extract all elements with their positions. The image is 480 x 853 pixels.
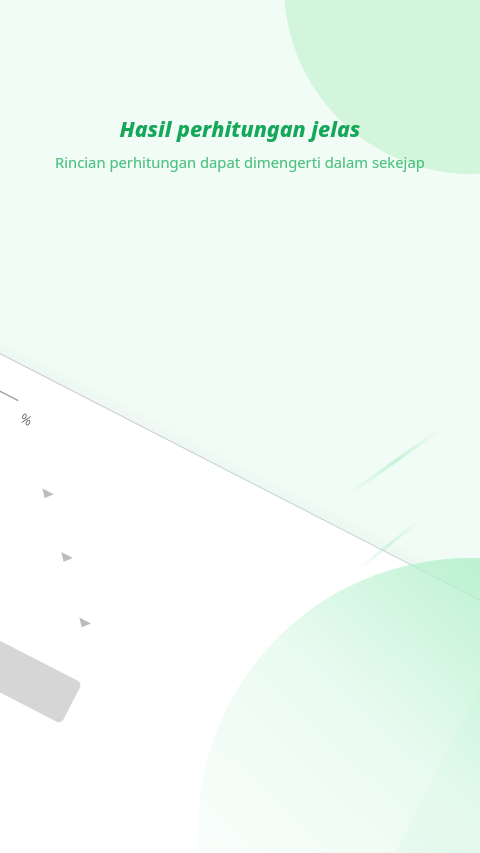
- button[interactable]: Atur Ulang: [60, 500, 210, 570]
